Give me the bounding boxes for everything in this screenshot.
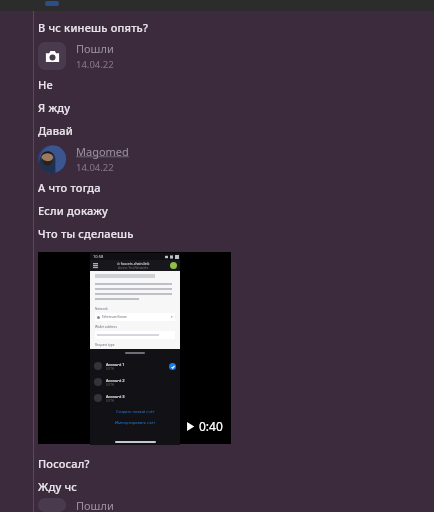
staticText: Account 3 [106, 394, 125, 399]
other: Photo attachment [38, 498, 66, 512]
button[interactable]: В чс кинешь опять? [0, 16, 434, 39]
button[interactable]: Что ты сделаешь [0, 222, 434, 245]
staticText: Ethereum Kovan [102, 315, 127, 319]
staticText: Пошли [76, 41, 114, 56]
staticText: 0 ETH [106, 399, 115, 403]
staticText: Пошли [76, 498, 114, 512]
staticText: Network [95, 307, 108, 311]
button[interactable]: Photo attachment [0, 498, 434, 512]
button[interactable]: Не [0, 73, 434, 96]
staticText: Пососал? [38, 456, 90, 471]
staticText: 14.04.22 [76, 58, 114, 71]
staticText: Account 2 [106, 378, 125, 383]
staticText: 0 ETH [106, 383, 115, 387]
staticText: Magomed [76, 144, 129, 159]
button[interactable]: Magomed avatar [38, 145, 66, 173]
staticText: Давай [38, 123, 73, 138]
button[interactable]: Photo attachment [38, 42, 66, 70]
staticText: Не [38, 77, 53, 92]
staticText: Я жду [38, 100, 71, 115]
staticText: А что тогда [38, 180, 101, 195]
staticText: В чс кинешь опять? [38, 20, 149, 35]
staticText: Если докажу [38, 203, 109, 218]
staticText: 0:40 [199, 418, 223, 434]
button[interactable]: Magomed avatar [0, 142, 434, 176]
button[interactable]: А что тогда [0, 176, 434, 199]
button[interactable]: Жду чс [0, 475, 434, 498]
staticText: Создать новый счёт [116, 409, 155, 414]
staticText: Что ты сделаешь [38, 226, 134, 241]
staticText: Wallet address [95, 325, 117, 329]
button[interactable]: Давай [0, 119, 434, 142]
staticText: Жду чс [38, 479, 78, 494]
staticText: Импортировать счёт [115, 420, 156, 425]
staticText: Account 1 [106, 362, 125, 367]
staticText: ⊙ faucets.chain.link [117, 261, 150, 266]
staticText: 0 ETH [106, 367, 115, 371]
button[interactable]: Play video, 0:40 [38, 252, 231, 444]
staticText: Request type [95, 343, 115, 347]
button[interactable]: Photo attachment [0, 39, 434, 73]
staticText: 10:58 [93, 254, 104, 259]
button[interactable]: Пососал? [0, 452, 434, 475]
staticText: ▾ [171, 315, 173, 319]
button[interactable]: Если докажу [0, 199, 434, 222]
staticText: 14.04.22 [76, 161, 114, 174]
staticText: Access Test Networks [118, 266, 149, 270]
button[interactable]: Я жду [0, 96, 434, 119]
